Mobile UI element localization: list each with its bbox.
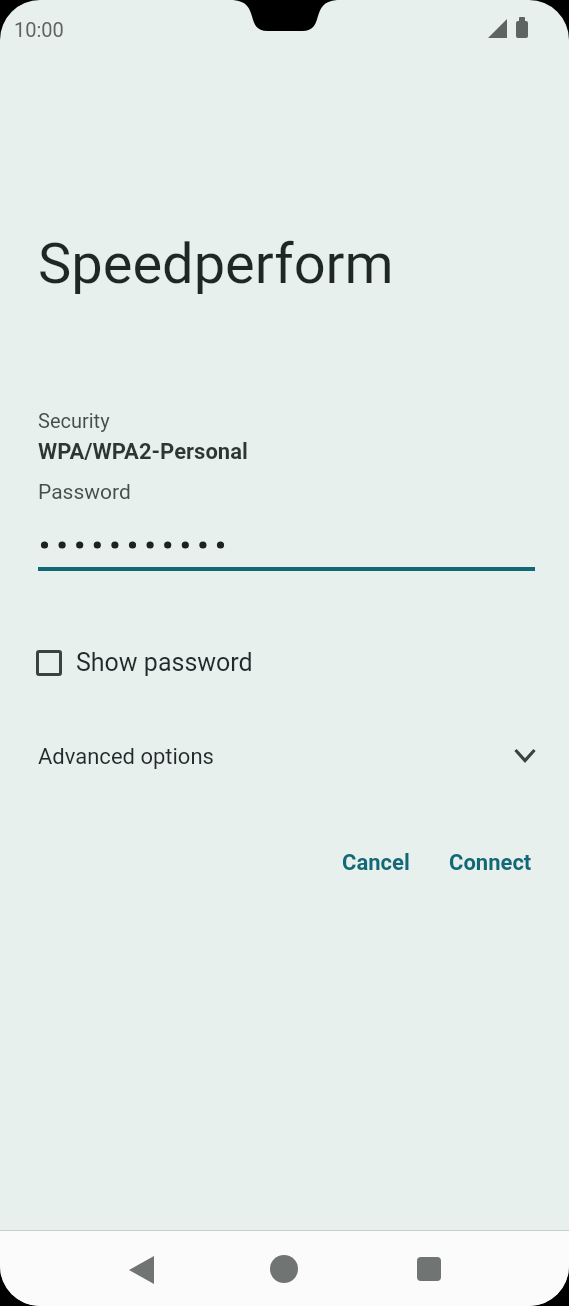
button[interactable]	[437, 840, 544, 884]
staticText: Advanced options	[38, 744, 214, 770]
staticText: Password	[38, 480, 131, 505]
button[interactable]	[38, 520, 535, 571]
staticText: Show password	[76, 648, 253, 677]
staticText: Security	[38, 409, 110, 432]
button[interactable]	[396, 1248, 458, 1292]
button[interactable]	[330, 840, 422, 884]
button[interactable]	[0, 730, 569, 782]
staticText: Cancel	[342, 850, 410, 876]
button[interactable]	[253, 1248, 315, 1292]
staticText: 10:00	[14, 18, 64, 41]
staticText: Connect	[449, 850, 532, 876]
button[interactable]	[24, 638, 284, 688]
staticText: WPA/WPA2-Personal	[38, 439, 248, 465]
button[interactable]	[112, 1248, 174, 1292]
staticText: Speedperform	[38, 231, 394, 297]
